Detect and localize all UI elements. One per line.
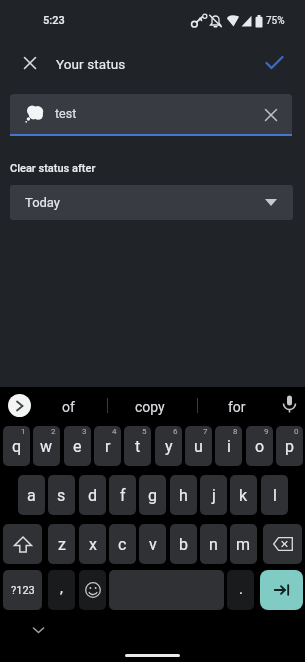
staticText: v	[149, 535, 157, 554]
staticText: 6	[173, 427, 178, 436]
button[interactable]	[260, 570, 303, 610]
staticText: c	[118, 535, 127, 554]
button[interactable]: test	[10, 94, 292, 136]
staticText: h	[179, 486, 188, 505]
staticText: k	[239, 486, 248, 505]
button[interactable]: o	[246, 426, 273, 466]
button[interactable]: e	[64, 426, 91, 466]
staticText: 8	[233, 427, 238, 436]
button[interactable]: g	[139, 475, 166, 515]
staticText: 2	[51, 427, 56, 436]
button[interactable]	[79, 570, 106, 610]
staticText: l	[273, 486, 277, 505]
staticText: 1	[21, 427, 26, 436]
staticText: 4	[112, 427, 117, 436]
staticText: n	[209, 535, 218, 554]
button[interactable]: w	[33, 426, 60, 466]
button[interactable]: c	[109, 524, 136, 564]
button[interactable]: h	[170, 475, 197, 515]
button[interactable]: of	[38, 398, 98, 416]
staticText: 9	[264, 427, 269, 436]
button[interactable]: p	[276, 426, 303, 466]
button[interactable]: d	[79, 475, 106, 515]
staticText: 5:23	[43, 14, 65, 27]
button[interactable]: z	[48, 524, 75, 564]
button[interactable]: m	[230, 524, 257, 564]
button[interactable]: ,	[48, 570, 75, 610]
button[interactable]	[282, 395, 297, 414]
button[interactable]	[263, 524, 302, 564]
button[interactable]: u	[185, 426, 212, 466]
button[interactable]: x	[79, 524, 106, 564]
staticText: ,	[60, 579, 63, 597]
staticText: 3	[82, 427, 87, 436]
button[interactable]	[8, 394, 31, 417]
button[interactable]: t	[124, 426, 151, 466]
staticText: u	[194, 437, 203, 456]
button[interactable]	[32, 626, 45, 635]
staticText: .	[239, 580, 243, 598]
staticText: 0	[294, 427, 299, 436]
staticText: m	[236, 535, 251, 554]
button[interactable]: for	[207, 398, 267, 416]
button[interactable]	[265, 55, 284, 70]
button[interactable]: r	[94, 426, 121, 466]
staticText: x	[89, 535, 97, 554]
staticText: 75%	[266, 15, 285, 27]
staticText: 5	[142, 427, 147, 436]
staticText: for	[228, 399, 246, 415]
button[interactable]	[3, 524, 42, 564]
staticText: o	[255, 437, 265, 456]
staticText: w	[40, 437, 53, 456]
staticText: e	[73, 437, 82, 456]
button[interactable]	[24, 57, 36, 69]
button[interactable]: Today	[10, 185, 293, 220]
button[interactable]	[109, 570, 224, 610]
staticText: q	[12, 437, 22, 456]
button[interactable]: j	[200, 475, 227, 515]
staticText: r	[105, 437, 111, 456]
button[interactable]: s	[48, 475, 75, 515]
button[interactable]: copy	[120, 398, 180, 416]
button[interactable]: y	[155, 426, 182, 466]
staticText: g	[148, 486, 157, 505]
staticText: y	[165, 437, 173, 456]
button[interactable]: i	[215, 426, 242, 466]
staticText: Today	[25, 195, 61, 210]
staticText: ?123	[11, 584, 35, 597]
staticText: 7	[203, 427, 208, 436]
staticText: of	[62, 399, 75, 415]
staticText: t	[135, 437, 141, 456]
button[interactable]: v	[139, 524, 166, 564]
button[interactable]: b	[170, 524, 197, 564]
staticText: j	[212, 486, 216, 505]
staticText: a	[27, 486, 36, 505]
button[interactable]: ?123	[3, 570, 42, 610]
staticText: Clear status after	[10, 162, 96, 175]
staticText: copy	[135, 399, 165, 415]
staticText: s	[57, 486, 66, 505]
button[interactable]: l	[261, 475, 288, 515]
staticText: test	[55, 106, 77, 121]
button[interactable]: k	[230, 475, 257, 515]
button[interactable]: .	[227, 570, 254, 610]
staticText: d	[88, 486, 98, 505]
staticText: z	[58, 535, 66, 554]
staticText: p	[285, 437, 294, 456]
staticText: i	[227, 437, 231, 456]
staticText: f	[120, 486, 126, 505]
staticText: Your status	[56, 56, 126, 72]
button[interactable]: n	[200, 524, 227, 564]
button[interactable]: q	[3, 426, 30, 466]
button[interactable]: f	[109, 475, 136, 515]
button[interactable]: a	[18, 475, 45, 515]
staticText: b	[179, 535, 188, 554]
button[interactable]	[265, 109, 277, 121]
